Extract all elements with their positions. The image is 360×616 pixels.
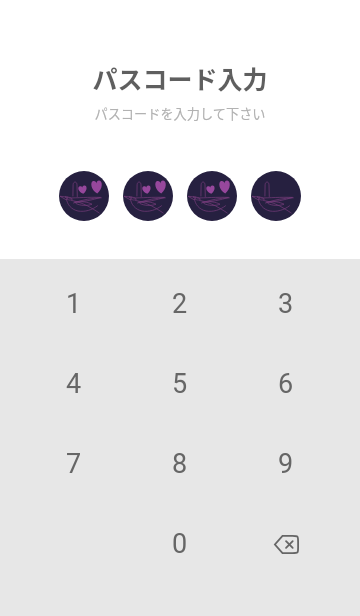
button[interactable]: 9 — [233, 424, 339, 504]
staticText: 3 — [278, 288, 294, 320]
button[interactable]: 4 — [21, 344, 127, 424]
staticText: 5 — [172, 368, 188, 400]
staticText: 2 — [172, 288, 188, 320]
staticText: 4 — [66, 368, 82, 400]
staticText: パスコード入力 — [92, 60, 268, 96]
button[interactable]: 7 — [21, 424, 127, 504]
button[interactable]: 3 — [233, 264, 339, 344]
button[interactable]: 0 — [127, 504, 233, 584]
staticText: 7 — [66, 448, 82, 480]
staticText: パスコードを入力して下さい — [94, 104, 266, 123]
staticText: 9 — [278, 448, 294, 480]
staticText: 8 — [172, 448, 188, 480]
button[interactable]: 8 — [127, 424, 233, 504]
button[interactable]: 5 — [127, 344, 233, 424]
staticText: 6 — [278, 368, 294, 400]
button[interactable]: Backspace — [233, 504, 339, 584]
button[interactable]: 6 — [233, 344, 339, 424]
button[interactable]: 1 — [21, 264, 127, 344]
staticText: 1 — [66, 288, 82, 320]
staticText: 0 — [172, 528, 188, 560]
button[interactable]: 2 — [127, 264, 233, 344]
